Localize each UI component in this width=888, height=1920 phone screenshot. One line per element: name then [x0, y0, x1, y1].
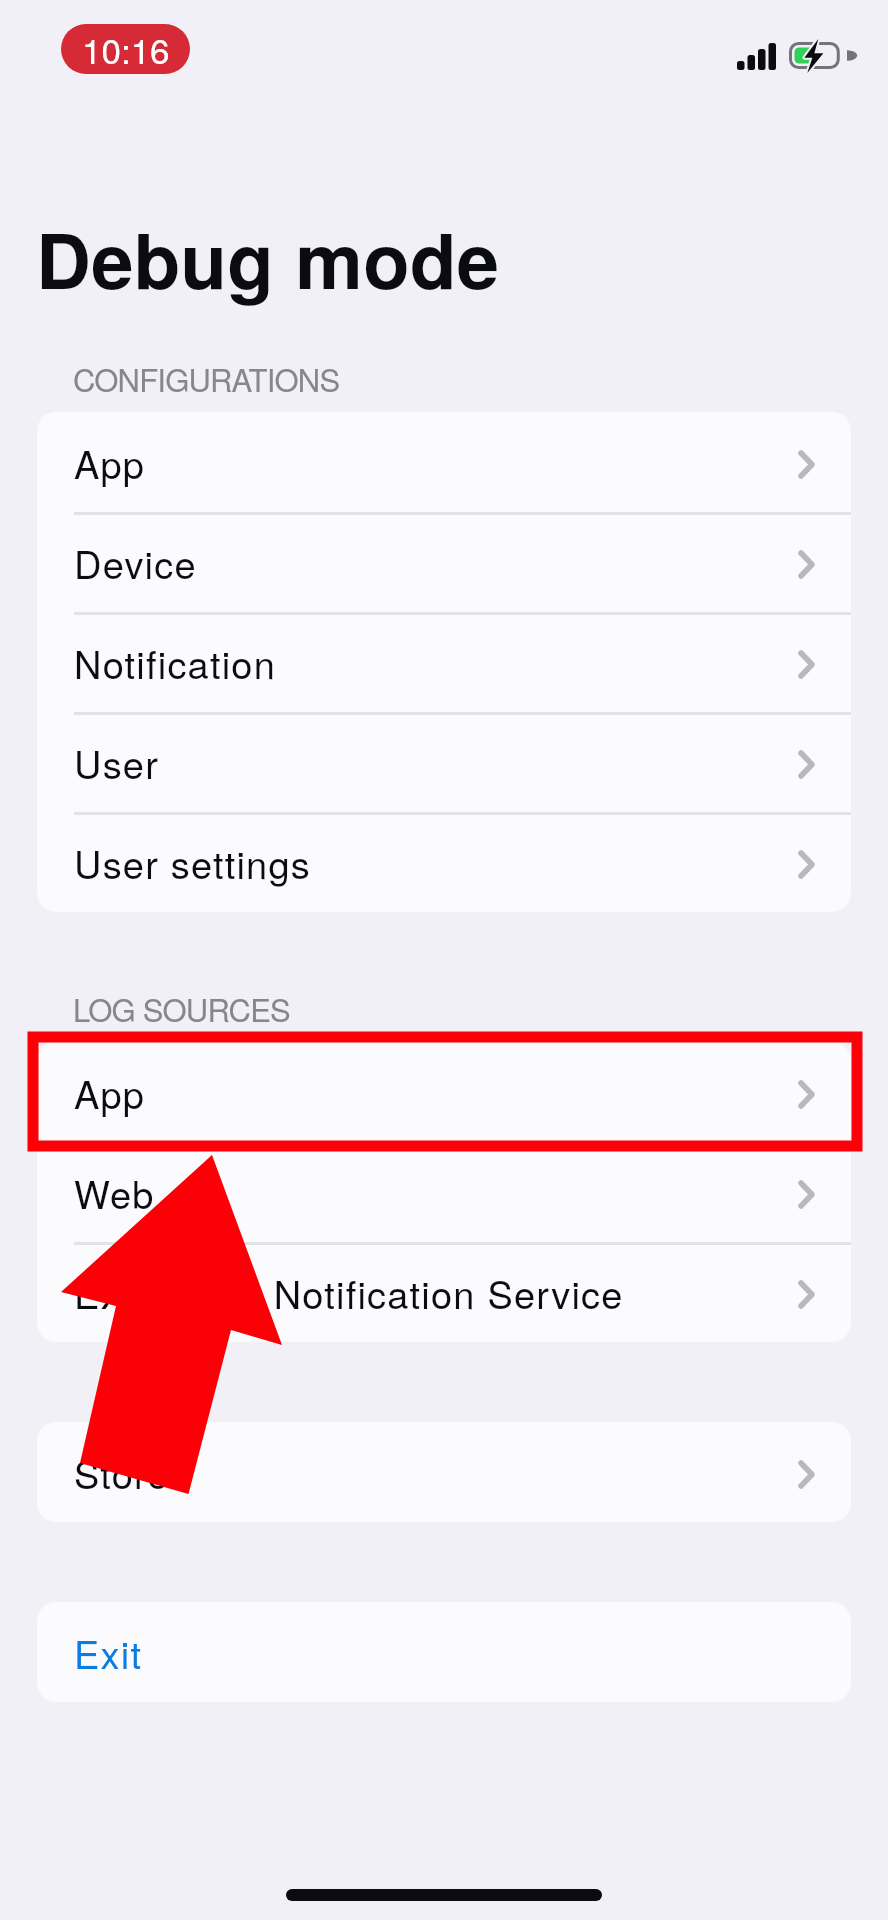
- staticText: Debug mode: [36, 203, 500, 312]
- staticText: User settings: [74, 835, 311, 889]
- button[interactable]: Notification: [37, 612, 851, 712]
- staticText: Web: [74, 1165, 155, 1219]
- button[interactable]: App: [37, 1042, 851, 1142]
- button[interactable]: User: [37, 712, 851, 812]
- button[interactable]: EXAMPLE Notification Service: [37, 1242, 851, 1342]
- staticText: User: [74, 735, 160, 789]
- staticText: CONFIGURATIONS: [73, 356, 340, 400]
- button[interactable]: Web: [37, 1142, 851, 1242]
- staticText: App: [74, 435, 146, 489]
- other: Battery charging: [789, 42, 847, 69]
- button[interactable]: Recording indicator, 10:16: [61, 24, 190, 74]
- button[interactable]: Device: [37, 512, 851, 612]
- staticText: LOG SOURCES: [73, 986, 290, 1030]
- button[interactable]: Store: [37, 1422, 851, 1522]
- staticText: App: [74, 1065, 146, 1119]
- staticText: Store: [74, 1445, 170, 1499]
- staticText: Device: [74, 535, 197, 589]
- button[interactable]: Exit: [37, 1602, 851, 1702]
- staticText: EXAMPLE Notification Service: [74, 1265, 624, 1319]
- staticText: Notification: [74, 635, 276, 689]
- other: Cellular signal: [737, 43, 776, 70]
- staticText: 10:16: [82, 24, 170, 74]
- staticText: Exit: [74, 1625, 143, 1679]
- button[interactable]: App: [37, 412, 851, 512]
- button[interactable]: User settings: [37, 812, 851, 912]
